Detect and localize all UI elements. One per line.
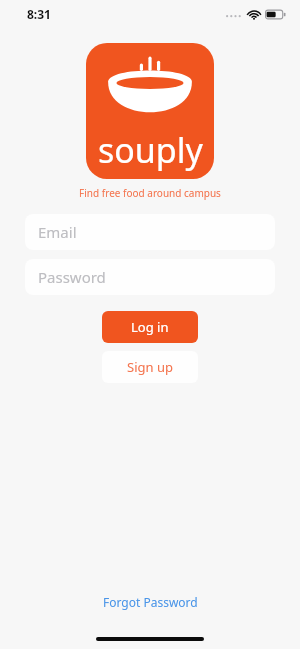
staticText: souply bbox=[98, 127, 203, 173]
staticText: Email bbox=[38, 222, 77, 242]
button[interactable]: Email bbox=[25, 214, 275, 250]
staticText: Find free food around campus bbox=[79, 186, 221, 200]
staticText: Password bbox=[38, 267, 106, 287]
button[interactable]: Log in bbox=[102, 311, 198, 343]
staticText: 8:31 bbox=[27, 6, 51, 22]
button[interactable]: Password bbox=[25, 259, 275, 295]
button[interactable]: Forgot Password bbox=[93, 589, 208, 615]
staticText: Forgot Password bbox=[103, 594, 198, 610]
staticText: Sign up bbox=[127, 358, 173, 376]
staticText: Log in bbox=[131, 318, 169, 336]
button[interactable]: Sign up bbox=[102, 351, 198, 383]
